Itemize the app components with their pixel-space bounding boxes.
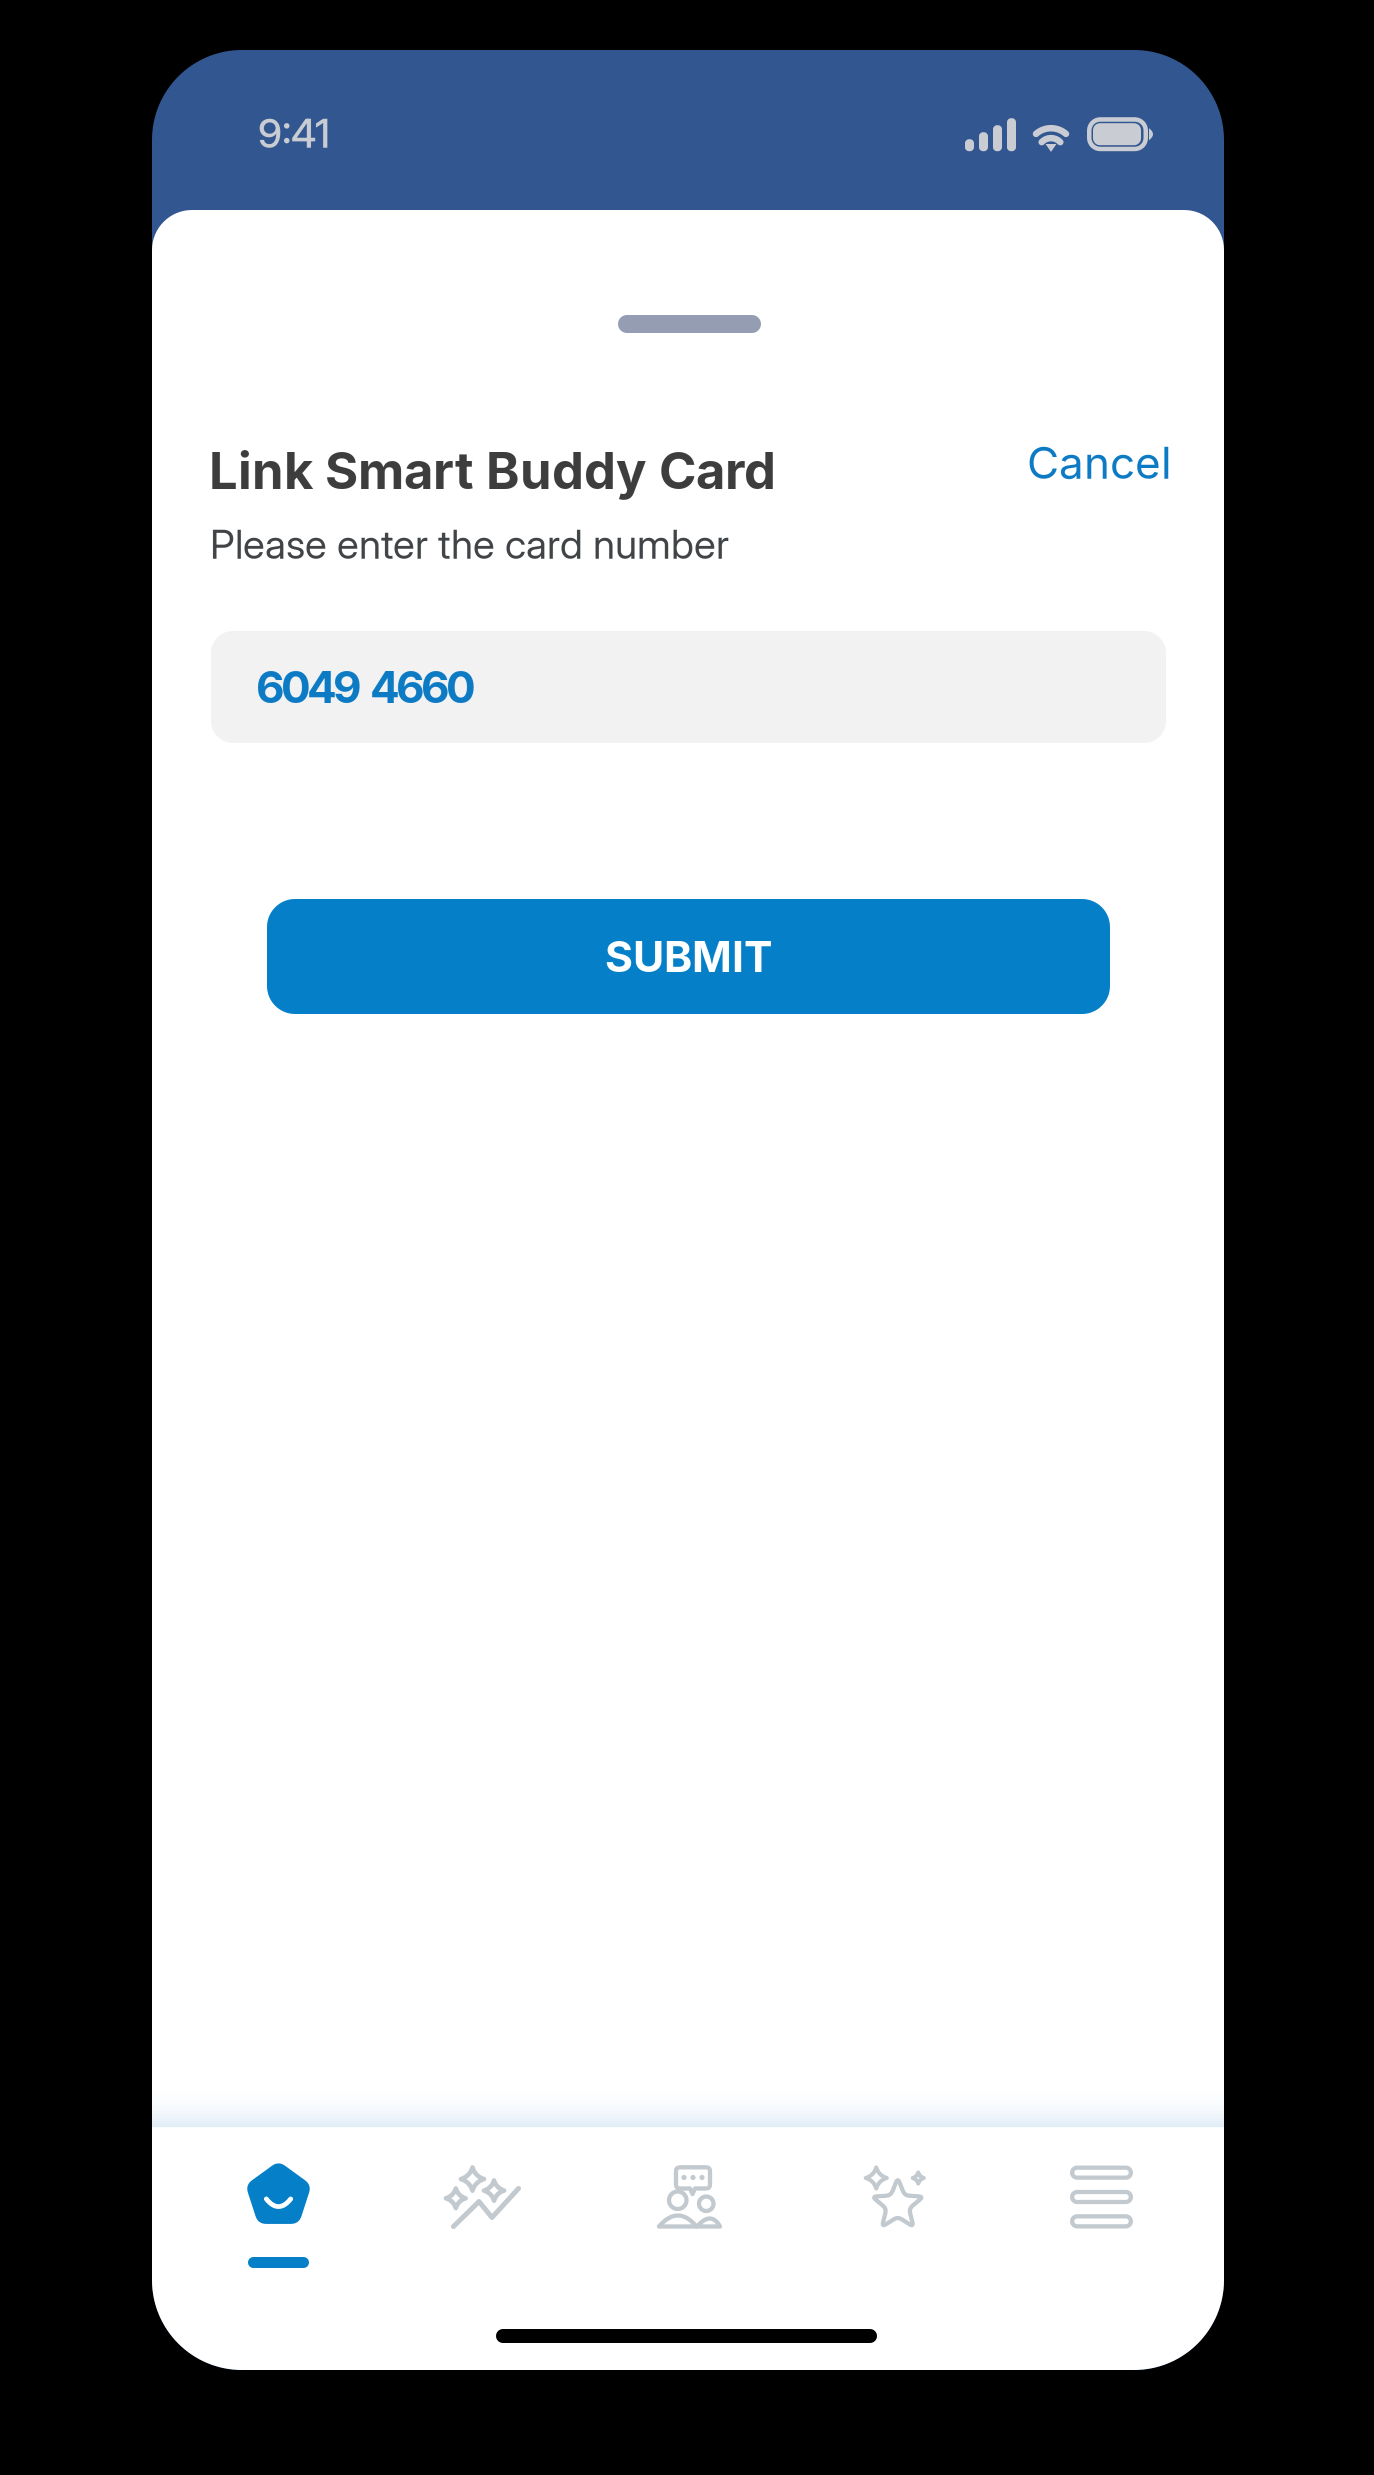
staticText: Cancel <box>1027 436 1172 489</box>
button[interactable]: Home <box>176 2150 381 2290</box>
button[interactable]: Cancel <box>1003 416 1196 509</box>
staticText: Please enter the card number <box>210 520 729 568</box>
staticText: 6049 4660 <box>256 660 476 714</box>
button[interactable]: Community <box>587 2150 793 2290</box>
staticText: 9:41 <box>258 109 330 157</box>
button[interactable]: Insights <box>381 2150 587 2290</box>
button[interactable]: Rewards <box>793 2150 999 2290</box>
staticText: Link Smart Buddy Card <box>209 440 776 501</box>
button[interactable]: SUBMIT <box>267 899 1110 1014</box>
button[interactable]: More <box>999 2150 1204 2290</box>
staticText: SUBMIT <box>605 931 772 982</box>
